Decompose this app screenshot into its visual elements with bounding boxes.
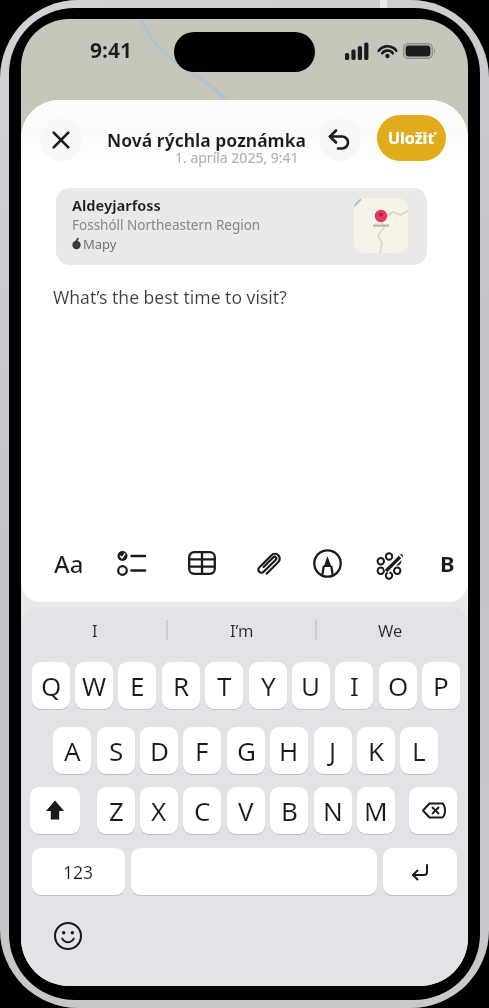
- button[interactable]: [40, 119, 82, 161]
- staticText: 1. apríla 2025, 9:41: [175, 148, 299, 167]
- staticText: 9:41: [90, 36, 132, 65]
- staticText: H: [279, 733, 299, 768]
- button[interactable]: [188, 551, 216, 575]
- button[interactable]: [409, 787, 457, 836]
- staticText: P: [433, 668, 449, 703]
- button[interactable]: U: [292, 662, 330, 711]
- staticText: R: [173, 668, 190, 703]
- staticText: I’m: [230, 619, 254, 641]
- staticText: Nová rýchla poznámka: [107, 128, 307, 152]
- staticText: Aldeyjarfoss: [72, 195, 161, 215]
- button[interactable]: S: [97, 727, 135, 776]
- button[interactable]: Uložiť: [377, 115, 446, 161]
- staticText: Aa: [54, 547, 84, 580]
- staticText: D: [150, 733, 169, 768]
- staticText: Q: [41, 668, 62, 703]
- button[interactable]: [30, 787, 80, 836]
- staticText: Uložiť: [388, 127, 435, 149]
- button[interactable]: I: [45, 609, 145, 651]
- button[interactable]: O: [379, 662, 417, 711]
- staticText: S: [109, 733, 124, 768]
- button[interactable]: K: [357, 727, 395, 776]
- staticText: V: [238, 793, 254, 828]
- staticText: O: [388, 668, 409, 703]
- button[interactable]: Q: [32, 662, 70, 711]
- button[interactable]: Aldeyjarfoss: [56, 188, 427, 265]
- staticText: A: [64, 733, 81, 768]
- staticText: Mapy: [83, 235, 117, 253]
- button[interactable]: V: [227, 787, 265, 836]
- button[interactable]: [117, 549, 147, 578]
- staticText: F: [195, 733, 209, 768]
- button[interactable]: M: [357, 787, 395, 836]
- staticText: B: [440, 548, 455, 578]
- button[interactable]: P: [422, 662, 460, 711]
- button[interactable]: C: [183, 787, 221, 836]
- button[interactable]: We: [340, 609, 440, 651]
- staticText: I: [350, 668, 359, 703]
- button[interactable]: T: [205, 662, 243, 711]
- staticText: C: [194, 793, 211, 828]
- staticText: I: [92, 619, 98, 641]
- button[interactable]: I’m: [192, 609, 292, 651]
- button[interactable]: W: [75, 662, 113, 711]
- button[interactable]: L: [400, 727, 438, 776]
- button[interactable]: I: [335, 662, 373, 711]
- button[interactable]: N: [314, 787, 352, 836]
- button[interactable]: [313, 549, 342, 578]
- button[interactable]: Z: [97, 787, 135, 836]
- staticText: What’s the best time to visit?: [53, 285, 287, 309]
- staticText: E: [130, 668, 145, 703]
- button[interactable]: Aa: [45, 541, 93, 585]
- staticText: 123: [63, 860, 94, 884]
- staticText: W: [82, 668, 107, 703]
- staticText: Y: [261, 668, 276, 703]
- button[interactable]: [53, 921, 83, 951]
- button[interactable]: E: [118, 662, 156, 711]
- staticText: X: [151, 793, 167, 828]
- button[interactable]: J: [314, 727, 352, 776]
- button[interactable]: X: [140, 787, 178, 836]
- button[interactable]: B: [430, 541, 465, 585]
- staticText: G: [237, 733, 256, 768]
- staticText: N: [323, 793, 343, 828]
- button[interactable]: B: [270, 787, 308, 836]
- staticText: J: [329, 733, 337, 768]
- button[interactable]: [383, 848, 457, 897]
- staticText: L: [412, 733, 426, 768]
- staticText: Z: [109, 793, 124, 828]
- button[interactable]: [373, 548, 407, 582]
- button[interactable]: [131, 848, 377, 897]
- staticText: U: [301, 668, 321, 703]
- button[interactable]: D: [140, 727, 178, 776]
- button[interactable]: H: [270, 727, 308, 776]
- button[interactable]: R: [162, 662, 200, 711]
- staticText: Fosshóll Northeastern Region: [72, 216, 261, 234]
- staticText: M: [364, 793, 388, 828]
- staticText: T: [217, 668, 232, 703]
- staticText: B: [281, 793, 298, 828]
- button[interactable]: [319, 119, 361, 161]
- button[interactable]: G: [227, 727, 265, 776]
- button[interactable]: A: [53, 727, 91, 776]
- button[interactable]: Y: [249, 662, 287, 711]
- staticText: K: [368, 733, 385, 768]
- button[interactable]: F: [183, 727, 221, 776]
- staticText: We: [378, 619, 403, 641]
- button[interactable]: [255, 548, 285, 579]
- button[interactable]: 123: [32, 848, 125, 897]
